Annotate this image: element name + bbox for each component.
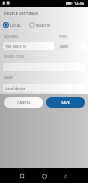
staticText: DEVICE SETTINGS (4, 11, 39, 16)
staticText: 14:06 (74, 1, 85, 6)
button[interactable]: 192.168.0.15 (3, 42, 54, 50)
staticText: DEVICE CODE (4, 55, 25, 59)
button[interactable]: 3000 (58, 42, 85, 50)
staticText: Local device (5, 86, 26, 91)
staticText: 3000 (60, 44, 69, 49)
staticText: REMOTE (36, 23, 51, 28)
staticText: SAVE (61, 100, 70, 105)
staticText: CANCEL (17, 100, 31, 105)
button[interactable]: REMOTE (28, 21, 52, 29)
staticText: LOCAL (10, 23, 22, 28)
button[interactable]: SAVE (46, 97, 85, 108)
button[interactable]: Home (37, 169, 51, 183)
button[interactable] (3, 63, 85, 71)
button[interactable]: CANCEL (4, 97, 43, 108)
button[interactable]: Recents (15, 169, 29, 183)
staticText: ADDRESS (4, 35, 18, 39)
staticText: NAME (4, 76, 14, 80)
button[interactable]: Local device (3, 84, 85, 92)
staticText: 192.168.0.15 (5, 44, 27, 49)
button[interactable]: Back (58, 169, 72, 183)
button[interactable]: LOCAL (2, 21, 23, 29)
staticText: PORT (59, 35, 68, 39)
